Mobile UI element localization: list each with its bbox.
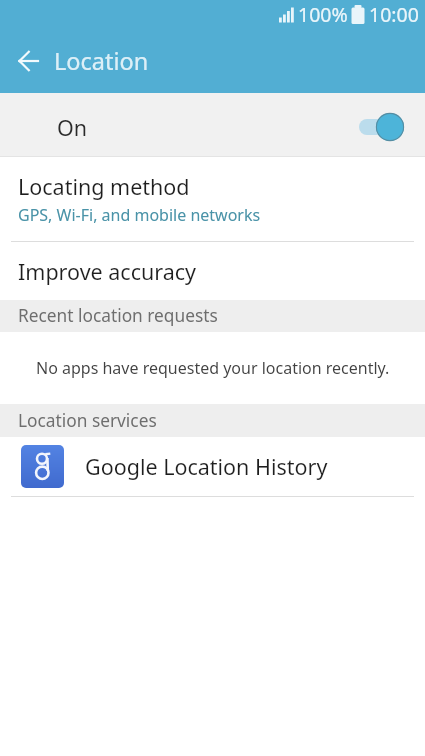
staticText: Locating method — [18, 172, 190, 201]
staticText: GPS, Wi-Fi, and mobile networks — [18, 204, 261, 226]
staticText: Recent location requests — [18, 304, 218, 328]
button[interactable]: Improve accuracy — [0, 242, 425, 300]
button[interactable] — [0, 28, 54, 93]
button[interactable]: Google Location History — [0, 437, 425, 496]
staticText: No apps have requested your location rec… — [36, 357, 390, 379]
staticText: On — [57, 113, 88, 142]
staticText: Location — [54, 45, 149, 77]
staticText: Location services — [18, 409, 157, 433]
staticText: 100% — [298, 1, 348, 28]
button[interactable]: On — [0, 93, 425, 156]
button[interactable]: Locating method — [0, 157, 425, 241]
staticText: Improve accuracy — [18, 257, 197, 286]
staticText: Google Location History — [85, 452, 328, 481]
staticText: 10:00 — [369, 1, 419, 28]
